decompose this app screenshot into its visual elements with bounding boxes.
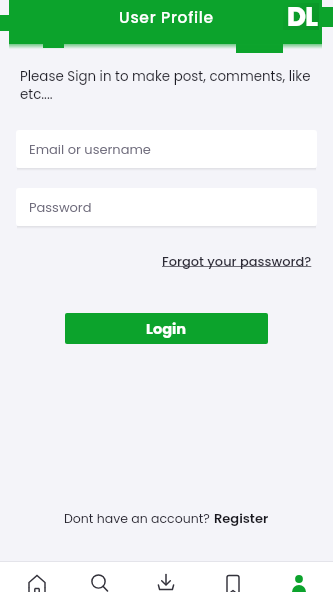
button[interactable] bbox=[266, 561, 333, 592]
staticText: User Profile bbox=[119, 7, 214, 29]
button[interactable]: Forgot your password? bbox=[162, 252, 312, 270]
staticText: DL bbox=[287, 0, 318, 35]
button[interactable]: Email or username bbox=[16, 130, 317, 168]
button[interactable] bbox=[66, 561, 132, 592]
staticText: Please Sign in to make post, comments, l… bbox=[20, 67, 311, 104]
button[interactable]: Login bbox=[65, 313, 268, 344]
button[interactable] bbox=[199, 561, 266, 592]
staticText: Password bbox=[29, 198, 92, 216]
button[interactable]: Register bbox=[214, 509, 269, 527]
button[interactable]: User Profile bbox=[0, 0, 333, 36]
staticText: Login bbox=[146, 319, 187, 339]
button[interactable] bbox=[132, 561, 199, 592]
button[interactable] bbox=[0, 561, 66, 592]
staticText: Dont have an account? bbox=[64, 510, 214, 527]
staticText: Email or username bbox=[29, 140, 151, 158]
button[interactable]: Password bbox=[16, 188, 317, 226]
staticText: Register bbox=[214, 509, 269, 527]
staticText: Forgot your password? bbox=[162, 252, 312, 270]
